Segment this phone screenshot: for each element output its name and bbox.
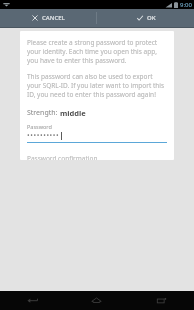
- staticText: middle: [60, 108, 86, 118]
- button[interactable]: Password: [27, 123, 167, 143]
- staticText: Password: [27, 123, 52, 130]
- staticText: Please create a strong password to prote…: [27, 38, 167, 65]
- staticText: 9:00: [180, 1, 192, 9]
- staticText: Strength:: [27, 108, 60, 118]
- staticText: CANCEL: [42, 14, 65, 22]
- staticText: This password can also be used to export…: [27, 72, 167, 99]
- button[interactable]: Password confirmation: [27, 154, 167, 160]
- button[interactable]: Recent apps: [129, 291, 194, 310]
- button[interactable]: Back: [0, 291, 64, 310]
- button[interactable]: OK: [97, 9, 194, 27]
- staticText: ••••••••••: [27, 131, 60, 141]
- staticText: Password confirmation: [27, 154, 98, 160]
- staticText: OK: [147, 14, 156, 22]
- button[interactable]: Home: [64, 291, 129, 310]
- button[interactable]: CANCEL: [0, 9, 96, 27]
